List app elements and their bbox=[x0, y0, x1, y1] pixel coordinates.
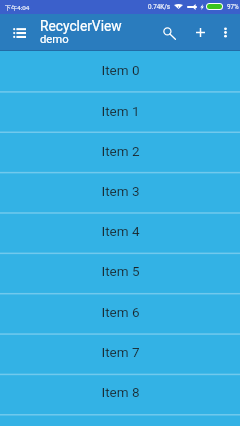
staticText: Item 2 bbox=[101, 143, 140, 159]
staticText: Item 6 bbox=[101, 304, 140, 320]
staticText: Item 1 bbox=[101, 103, 140, 119]
staticText: Item 4 bbox=[101, 223, 140, 239]
staticText: Item 3 bbox=[101, 183, 140, 199]
button[interactable] bbox=[0, 91, 240, 131]
button[interactable] bbox=[0, 212, 240, 252]
staticText: Item 8 bbox=[101, 384, 140, 400]
staticText: 0.74K/s bbox=[148, 3, 171, 10]
button[interactable] bbox=[0, 253, 240, 293]
staticText: Item 7 bbox=[101, 344, 140, 360]
staticText: Item 5 bbox=[101, 263, 140, 279]
button[interactable] bbox=[0, 293, 240, 333]
button[interactable]: Menu bbox=[6, 20, 32, 46]
button[interactable] bbox=[0, 132, 240, 172]
staticText: Item 0 bbox=[101, 62, 140, 78]
staticText: 下午4:04 bbox=[5, 3, 30, 11]
button[interactable] bbox=[0, 334, 240, 374]
button[interactable] bbox=[0, 414, 240, 426]
button[interactable]: Search bbox=[156, 19, 182, 45]
staticText: 97% bbox=[227, 3, 239, 10]
staticText: demo bbox=[40, 33, 69, 46]
button[interactable] bbox=[0, 172, 240, 212]
button[interactable] bbox=[0, 374, 240, 414]
button[interactable]: More options bbox=[212, 19, 238, 45]
button[interactable] bbox=[0, 51, 240, 91]
staticText: RecyclerView bbox=[40, 18, 122, 34]
button[interactable]: Add bbox=[187, 19, 213, 45]
